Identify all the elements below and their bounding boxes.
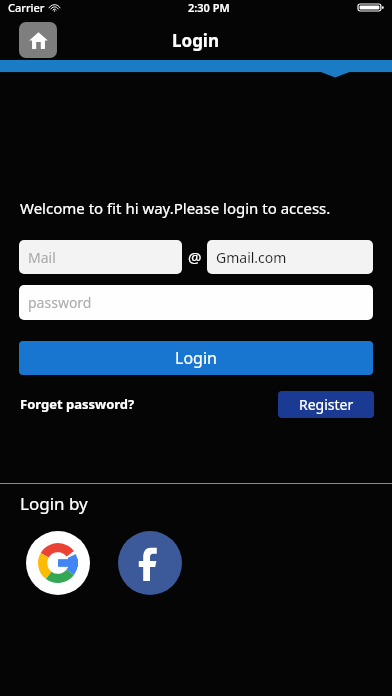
button[interactable]: Login with Facebook — [118, 531, 182, 595]
button[interactable]: Gmail.com — [207, 240, 373, 274]
button[interactable]: password — [19, 285, 373, 320]
button[interactable]: Home — [19, 22, 57, 58]
staticText: Register — [299, 395, 354, 414]
staticText: password — [28, 293, 92, 312]
staticText: Login by — [20, 492, 88, 515]
staticText: Mail — [28, 248, 56, 267]
staticText: Forget password? — [20, 395, 135, 413]
staticText: Gmail.com — [216, 248, 287, 267]
staticText: Login — [175, 347, 217, 369]
staticText: Welcome to fit hi way.Please login to ac… — [20, 198, 331, 218]
button[interactable]: Register — [278, 391, 374, 418]
button[interactable]: Mail — [19, 240, 182, 274]
staticText: @ — [188, 247, 202, 267]
staticText: 2:30 PM — [188, 0, 230, 15]
staticText: Carrier — [8, 0, 45, 15]
button[interactable]: Login — [19, 341, 373, 375]
staticText: Login — [172, 29, 220, 52]
button[interactable]: Login with Google — [26, 531, 90, 595]
